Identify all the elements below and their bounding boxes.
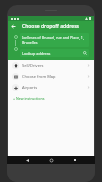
staticText: Choose dropoff address [22, 23, 80, 30]
staticText: Choose from Map [22, 74, 87, 79]
staticText: + New instructions [13, 96, 45, 101]
staticText: Lookup address [22, 51, 51, 56]
button[interactable]: Sell/Drivers [8, 60, 94, 71]
button[interactable]: Ixelleses of Brussel, rue and Place, 1, … [20, 33, 89, 47]
button[interactable]: Home [47, 156, 55, 164]
staticText: Ixelleses of Brussel, rue and Place, 1, … [22, 35, 87, 45]
button[interactable]: Back [8, 21, 19, 32]
button[interactable]: Choose from Map [8, 71, 94, 82]
button[interactable]: + New instructions [8, 93, 94, 101]
button[interactable]: Recent apps [71, 156, 79, 164]
button[interactable]: Lookup address [20, 49, 89, 57]
button[interactable]: Airports [8, 82, 94, 93]
button[interactable]: Back [23, 156, 31, 164]
staticText: Airports [22, 85, 87, 90]
staticText: Sell/Drivers [22, 63, 87, 68]
